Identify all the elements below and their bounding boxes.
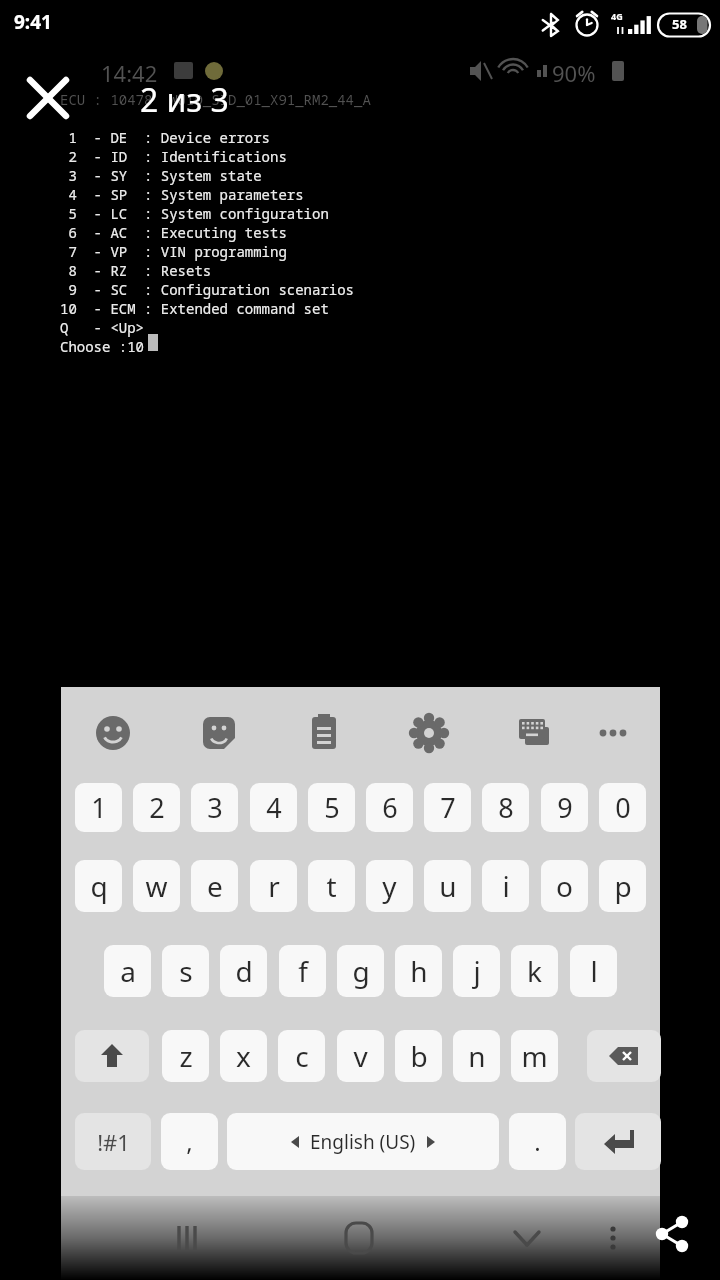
button[interactable]: a: [104, 945, 151, 997]
button[interactable]: x: [220, 1030, 267, 1082]
button[interactable]: g: [337, 945, 384, 997]
button[interactable]: !#1: [75, 1113, 151, 1170]
staticText: 14:42: [101, 58, 158, 88]
staticText: i: [502, 867, 510, 905]
staticText: j: [473, 952, 481, 990]
button[interactable]: e: [191, 860, 238, 912]
button[interactable]: Settings: [405, 709, 453, 757]
staticText: 10 - ECM : Extended command set: [60, 299, 329, 318]
button[interactable]: Shift: [75, 1030, 149, 1082]
staticText: 9:41: [14, 9, 52, 35]
button[interactable]: Share: [644, 1205, 702, 1263]
button[interactable]: h: [395, 945, 442, 997]
staticText: f: [298, 952, 308, 990]
staticText: 8: [498, 789, 514, 826]
staticText: 6 - AC : Executing tests: [60, 223, 287, 242]
button[interactable]: 5: [308, 783, 355, 832]
button[interactable]: 4: [250, 783, 297, 832]
staticText: 9 - SC : Configuration scenarios: [60, 280, 354, 299]
button[interactable]: 7: [424, 783, 471, 832]
button[interactable]: Home: [333, 1212, 385, 1264]
button[interactable]: More options: [591, 1216, 635, 1260]
staticText: d: [235, 952, 253, 990]
button[interactable]: i: [482, 860, 529, 912]
staticText: u: [439, 867, 457, 905]
staticText: 8 - RZ : Resets: [60, 261, 212, 280]
button[interactable]: o: [541, 860, 588, 912]
button[interactable]: English (US): [227, 1113, 499, 1170]
button[interactable]: Keyboard layouts: [511, 709, 559, 757]
button[interactable]: 0: [599, 783, 646, 832]
button[interactable]: Emoji: [89, 709, 137, 757]
button[interactable]: v: [337, 1030, 384, 1082]
button[interactable]: p: [599, 860, 646, 912]
button[interactable]: 3: [191, 783, 238, 832]
staticText: 1 - DE : Device errors: [60, 128, 270, 147]
staticText: m: [521, 1037, 548, 1075]
button[interactable]: Hide keyboard: [501, 1212, 553, 1264]
button[interactable]: m: [511, 1030, 558, 1082]
staticText: 2 из 3: [140, 78, 229, 122]
button[interactable]: u: [424, 860, 471, 912]
staticText: 3 - SY : System state: [60, 166, 262, 185]
staticText: Q - <Up>: [60, 318, 144, 337]
staticText: 7 - VP : VIN programming: [60, 242, 287, 261]
staticText: ECU : 10478 WUID_SID_01_X91_RM2_44_A: [60, 90, 371, 109]
button[interactable]: 9: [541, 783, 588, 832]
staticText: 1: [91, 789, 107, 826]
staticText: n: [468, 1037, 486, 1075]
staticText: ,: [186, 1125, 193, 1158]
staticText: 4G: [611, 10, 623, 22]
staticText: k: [527, 952, 542, 990]
button[interactable]: Stickers: [195, 709, 243, 757]
button[interactable]: More: [589, 709, 637, 757]
button[interactable]: k: [511, 945, 558, 997]
staticText: b: [410, 1037, 428, 1075]
staticText: e: [207, 867, 223, 905]
button[interactable]: q: [75, 860, 122, 912]
button[interactable]: Backspace: [587, 1030, 661, 1082]
button[interactable]: 8: [482, 783, 529, 832]
staticText: o: [556, 867, 573, 905]
button[interactable]: Close: [22, 72, 74, 124]
staticText: p: [614, 867, 632, 905]
button[interactable]: .: [509, 1113, 566, 1170]
staticText: c: [295, 1037, 309, 1075]
staticText: 9: [557, 789, 573, 826]
button[interactable]: d: [220, 945, 267, 997]
button[interactable]: b: [395, 1030, 442, 1082]
staticText: 0: [615, 789, 631, 826]
staticText: g: [352, 952, 370, 990]
staticText: r: [268, 867, 280, 905]
button[interactable]: z: [162, 1030, 209, 1082]
button[interactable]: t: [308, 860, 355, 912]
button[interactable]: 6: [366, 783, 413, 832]
staticText: Choose :10: [60, 337, 144, 356]
staticText: 6: [382, 789, 398, 826]
button[interactable]: 2: [133, 783, 180, 832]
button[interactable]: Enter: [575, 1113, 661, 1170]
button[interactable]: Recents: [161, 1212, 213, 1264]
staticText: t: [326, 867, 337, 905]
staticText: 90%: [552, 58, 596, 88]
staticText: v: [353, 1037, 368, 1075]
staticText: 2: [149, 789, 165, 826]
button[interactable]: j: [453, 945, 500, 997]
staticText: 4: [266, 789, 282, 826]
staticText: !#1: [97, 1127, 130, 1157]
staticText: .: [534, 1125, 541, 1158]
button[interactable]: r: [250, 860, 297, 912]
button[interactable]: Clipboard: [300, 709, 348, 757]
button[interactable]: y: [366, 860, 413, 912]
button[interactable]: l: [570, 945, 617, 997]
button[interactable]: c: [278, 1030, 325, 1082]
button[interactable]: 1: [75, 783, 122, 832]
button[interactable]: w: [133, 860, 180, 912]
button[interactable]: s: [162, 945, 209, 997]
button[interactable]: n: [453, 1030, 500, 1082]
button[interactable]: ,: [161, 1113, 218, 1170]
staticText: 5: [324, 789, 340, 826]
staticText: a: [120, 952, 136, 990]
button[interactable]: f: [279, 945, 326, 997]
staticText: s: [179, 952, 193, 990]
